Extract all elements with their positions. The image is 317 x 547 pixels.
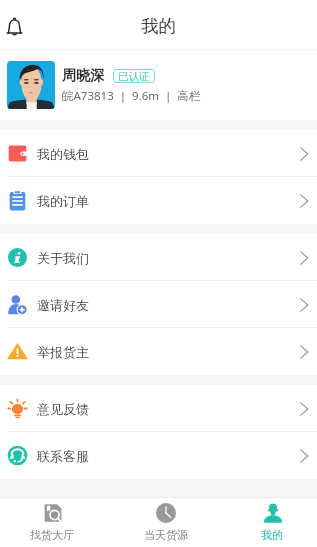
staticText: 周晓深 (62, 67, 104, 85)
button[interactable]: 当天货源 (104, 497, 227, 547)
button[interactable]: 邀请好友 (0, 281, 317, 328)
button[interactable]: 联系客服 (0, 432, 317, 479)
staticText: 已认证 (118, 70, 150, 83)
other: More (299, 297, 309, 313)
button[interactable]: 意见反馈 (0, 385, 317, 432)
staticText: 联系客服 (37, 448, 89, 464)
button[interactable]: 我的 (227, 497, 317, 547)
staticText: 意见反馈 (37, 401, 89, 417)
staticText: 当天货源 (144, 528, 188, 542)
staticText: 找货大厅 (30, 528, 74, 542)
other: More (299, 344, 309, 360)
other: More (299, 401, 309, 417)
button[interactable]: 我的钱包 (0, 130, 317, 177)
button[interactable]: 周晓深 (0, 50, 317, 120)
other: More (299, 146, 309, 162)
staticText: 我的 (141, 15, 176, 37)
staticText: 我的订单 (37, 193, 89, 209)
button[interactable]: 找货大厅 (0, 497, 104, 547)
staticText: 举报货主 (37, 344, 89, 360)
button[interactable]: 举报货主 (0, 328, 317, 375)
staticText: 邀请好友 (37, 297, 89, 313)
staticText: 我的 (261, 528, 283, 542)
other: More (299, 193, 309, 209)
other: More (299, 448, 309, 464)
staticText: 我的钱包 (37, 146, 89, 162)
staticText: 皖A73813 | 9.6m | 高栏 (62, 88, 201, 104)
staticText: 关于我们 (37, 250, 89, 266)
button[interactable]: 关于我们 (0, 234, 317, 281)
button[interactable]: 我的订单 (0, 177, 317, 224)
button[interactable]: Notifications (0, 12, 29, 41)
other: More (299, 250, 309, 266)
